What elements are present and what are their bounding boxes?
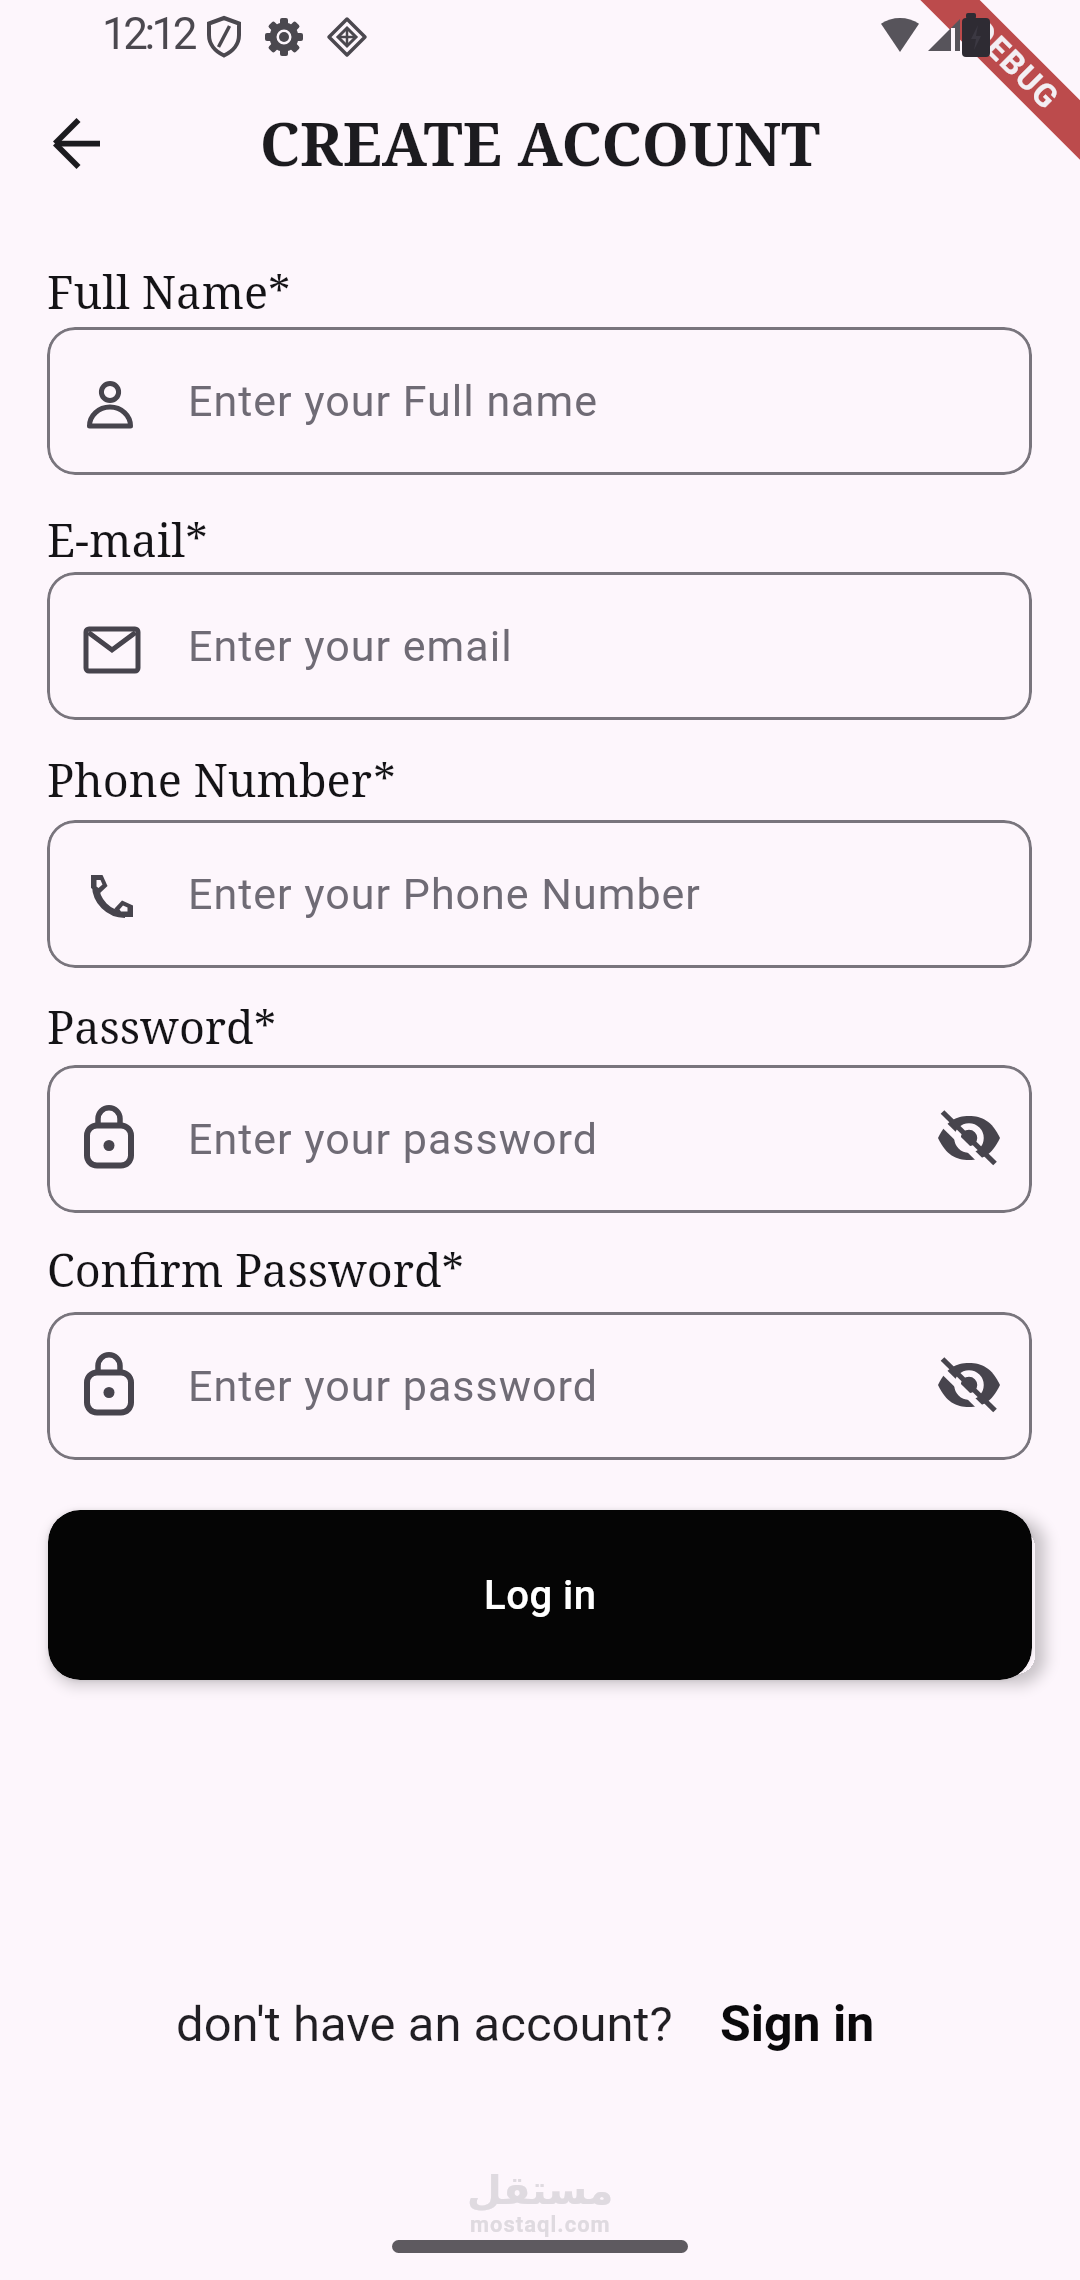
staticText: Enter your Full name xyxy=(188,376,599,426)
staticText: Password* xyxy=(47,996,277,1057)
staticText: Full Name* xyxy=(47,261,291,322)
staticText: مستقل xyxy=(467,2167,614,2214)
button[interactable]: Log in xyxy=(48,1510,1032,1680)
button[interactable]: Enter your Full name xyxy=(47,327,1032,475)
staticText: Confirm Password* xyxy=(47,1239,465,1300)
staticText: Log in xyxy=(484,1572,597,1619)
staticText: Phone Number* xyxy=(47,749,396,810)
button[interactable]: Enter your password xyxy=(47,1065,1032,1213)
button[interactable]: Enter your Phone Number xyxy=(47,820,1032,968)
staticText: don't have an account? xyxy=(176,1996,673,2053)
button[interactable] xyxy=(38,103,118,183)
staticText: Sign in xyxy=(720,1995,875,2054)
button[interactable]: Enter your email xyxy=(47,572,1032,720)
button[interactable]: Sign in xyxy=(720,1995,875,2054)
staticText: Enter your email xyxy=(188,621,513,671)
staticText: DEBUG xyxy=(963,13,1067,117)
staticText: 12:12 xyxy=(102,8,195,60)
button[interactable]: Enter your password xyxy=(47,1312,1032,1460)
staticText: mostaql.com xyxy=(470,2212,611,2238)
staticText: Enter your password xyxy=(188,1114,598,1164)
staticText: Enter your password xyxy=(188,1361,598,1411)
staticText: E-mail* xyxy=(47,509,208,570)
staticText: CREATE ACCOUNT xyxy=(0,102,1080,184)
staticText: Enter your Phone Number xyxy=(188,869,701,919)
